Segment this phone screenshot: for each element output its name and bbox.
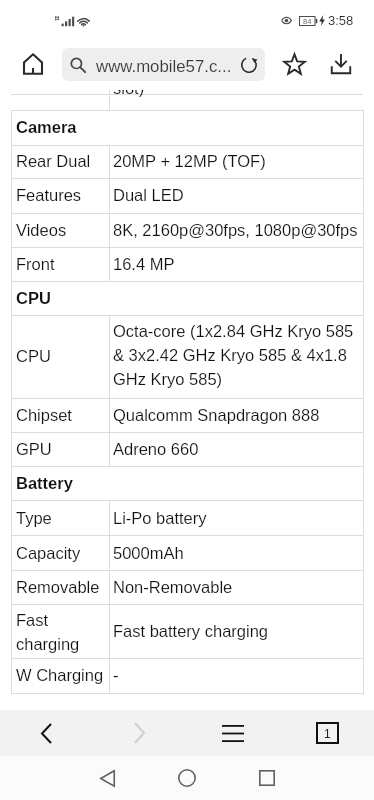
button[interactable]: Bookmark [278, 48, 310, 80]
staticText: 1 [324, 727, 331, 740]
button[interactable]: Download [325, 48, 357, 80]
staticText: Octa-core (1x2.84 GHz Kryo 585 [113, 322, 354, 340]
staticText: 3:58 [328, 13, 354, 28]
staticText: Battery [16, 474, 73, 492]
button[interactable]: Reload [240, 56, 258, 74]
staticText: Chipset [16, 406, 72, 424]
staticText: Fast battery charging [113, 622, 268, 640]
staticText: Front [16, 255, 55, 273]
staticText: Videos [16, 221, 67, 239]
staticText: Removable [16, 578, 100, 596]
button[interactable]: Recents [250, 761, 284, 795]
staticText: GPU [16, 440, 52, 458]
button[interactable]: Back [90, 761, 124, 795]
button[interactable]: Tabs [280, 710, 374, 756]
staticText: 8K, 2160p@30fps, 1080p@30fps [113, 221, 358, 239]
button[interactable]: Menu [186, 710, 280, 756]
staticText: 5000mAh [113, 544, 184, 562]
staticText: Features [16, 186, 82, 204]
staticText: & 3x2.42 GHz Kryo 585 & 4x1.8 [113, 346, 347, 364]
button[interactable]: Back [0, 710, 93, 756]
button[interactable]: Home [170, 761, 204, 795]
staticText: - [113, 666, 119, 684]
staticText: charging [16, 635, 80, 653]
button[interactable]: Home [16, 47, 50, 81]
staticText: GHz Kryo 585) [113, 370, 223, 388]
staticText: Adreno 660 [113, 440, 199, 458]
staticText: www.mobile57.c... [96, 57, 232, 76]
button[interactable]: Forward [93, 710, 186, 756]
staticText: slot) [113, 79, 145, 97]
staticText: 16.4 MP [113, 255, 175, 273]
staticText: Type [16, 509, 52, 527]
staticText: Camera [16, 118, 77, 136]
staticText: 20MP + 12MP (TOF) [113, 152, 266, 170]
staticText: Rear Dual [16, 152, 91, 170]
staticText: Dual LED [113, 186, 184, 204]
staticText: Li-Po battery [113, 509, 207, 527]
staticText: CPU [16, 289, 51, 307]
staticText: Fast [16, 611, 49, 629]
staticText: Non-Removable [113, 578, 233, 596]
staticText: 84 [303, 17, 312, 25]
staticText: CPU [16, 347, 51, 365]
button[interactable]: www.mobile57.c... [62, 48, 265, 81]
staticText: W Charging [16, 666, 104, 684]
staticText: Capacity [16, 544, 81, 562]
staticText: Qualcomm Snapdragon 888 [113, 406, 320, 424]
